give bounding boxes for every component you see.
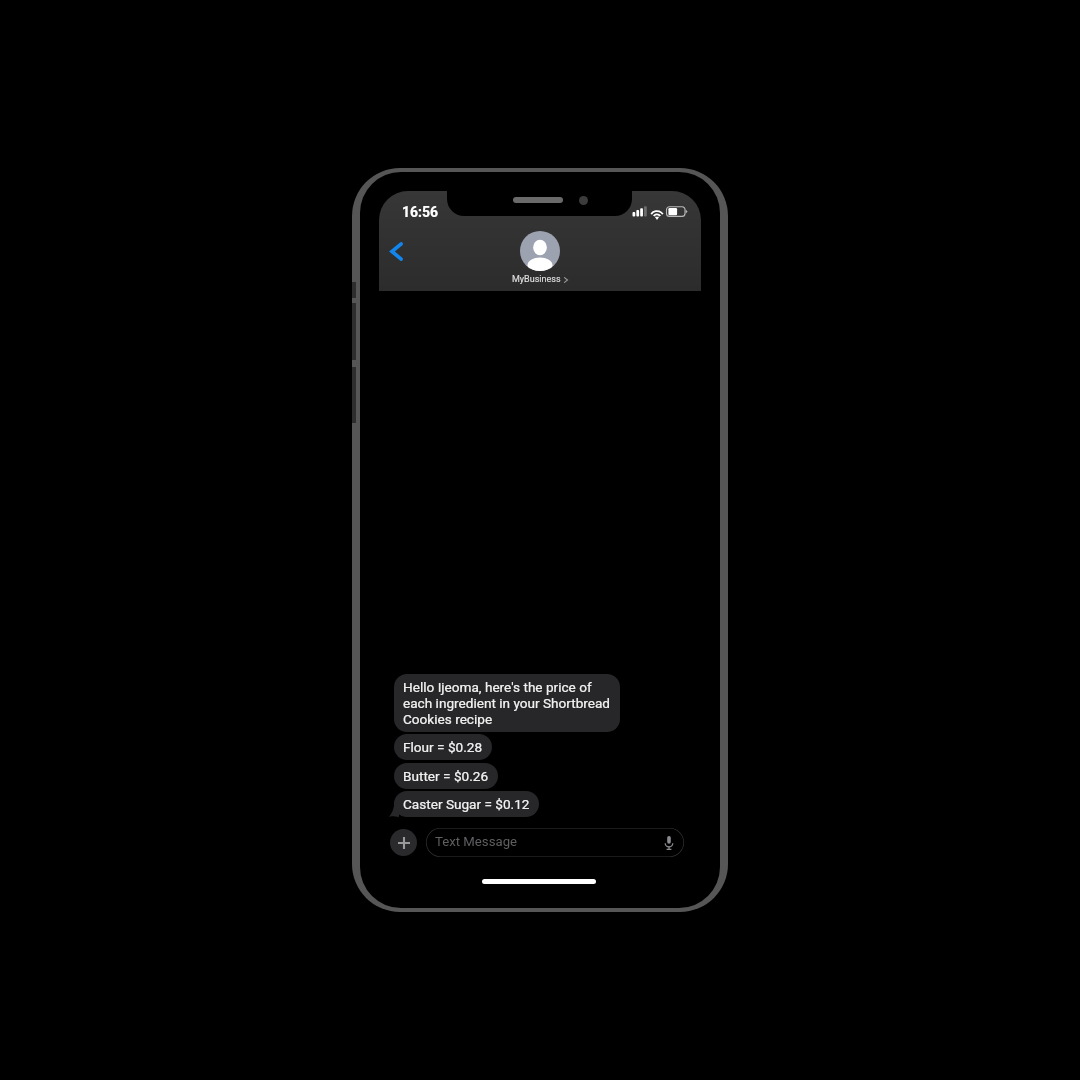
staticText: Caster Sugar = $0.12 <box>403 796 530 812</box>
staticText: MyBusiness <box>512 274 561 285</box>
button[interactable]: MyBusiness <box>503 228 577 282</box>
staticText: Hello Ijeoma, here's the price of each i… <box>403 679 611 727</box>
staticText: Flour = $0.28 <box>403 739 483 755</box>
button[interactable]: Add attachment <box>390 829 417 856</box>
button[interactable]: Flour = $0.28 <box>394 734 492 760</box>
button[interactable]: Butter = $0.26 <box>394 763 498 789</box>
button[interactable]: Hello Ijeoma, here's the price of each i… <box>394 674 620 732</box>
staticText: Butter = $0.26 <box>403 768 489 784</box>
button[interactable]: Caster Sugar = $0.12 <box>394 791 539 817</box>
staticText: Text Message <box>435 834 518 849</box>
button[interactable]: Text Message <box>426 828 684 857</box>
button[interactable]: Dictate <box>657 832 679 854</box>
button[interactable]: Back <box>381 236 411 266</box>
staticText: 16:56 <box>402 204 439 220</box>
